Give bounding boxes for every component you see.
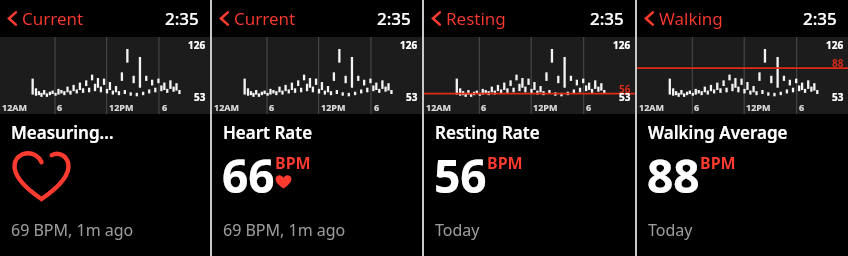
- staticText: 6: [269, 101, 275, 113]
- staticText: Current: [234, 7, 296, 30]
- staticText: 53: [832, 90, 844, 104]
- staticText: 126: [188, 38, 206, 52]
- staticText: 56: [434, 144, 487, 207]
- staticText: 12PM: [109, 101, 134, 113]
- other: Back: [219, 10, 230, 27]
- button[interactable]: Back: [424, 3, 512, 34]
- button[interactable]: 126: [212, 37, 422, 114]
- staticText: 6: [57, 101, 63, 113]
- staticText: Walking Average: [648, 121, 788, 144]
- staticText: Current: [22, 7, 84, 30]
- staticText: 2:35: [165, 7, 199, 30]
- staticText: 6: [586, 101, 592, 113]
- staticText: 126: [400, 38, 418, 52]
- staticText: 12PM: [746, 101, 771, 113]
- staticText: 12AM: [2, 101, 28, 113]
- staticText: Today: [435, 219, 480, 241]
- other: Measuring heart rate: [13, 149, 70, 200]
- staticText: 12PM: [533, 101, 558, 113]
- staticText: Measuring…: [11, 121, 114, 144]
- button[interactable]: Back: [637, 3, 729, 34]
- staticText: Heart Rate: [223, 121, 313, 144]
- staticText: 69 BPM, 1m ago: [223, 219, 346, 241]
- staticText: 6: [374, 101, 380, 113]
- staticText: 88: [647, 144, 700, 207]
- staticText: 6: [694, 101, 700, 113]
- staticText: 56: [619, 82, 631, 96]
- staticText: BPM: [700, 152, 736, 174]
- button[interactable]: 126: [424, 37, 635, 114]
- staticText: BPM: [487, 152, 523, 174]
- other: Back: [431, 10, 442, 27]
- staticText: 2:35: [590, 7, 624, 30]
- other: Back: [644, 10, 655, 27]
- button[interactable]: Back: [212, 3, 302, 34]
- staticText: 12AM: [426, 101, 452, 113]
- button[interactable]: 126: [0, 37, 210, 114]
- staticText: Today: [648, 219, 693, 241]
- staticText: 53: [619, 90, 631, 104]
- staticText: 2:35: [803, 7, 837, 30]
- staticText: Resting Rate: [435, 121, 540, 144]
- staticText: Walking: [659, 7, 723, 30]
- staticText: 12AM: [214, 101, 240, 113]
- staticText: 88: [832, 56, 844, 70]
- staticText: 6: [162, 101, 168, 113]
- staticText: BPM: [275, 152, 311, 174]
- button[interactable]: 126: [637, 37, 848, 114]
- staticText: 126: [826, 38, 844, 52]
- button[interactable]: Back: [0, 3, 90, 34]
- staticText: 69 BPM, 1m ago: [11, 219, 134, 241]
- other: Heart: [275, 174, 292, 189]
- staticText: 6: [799, 101, 805, 113]
- staticText: 2:35: [377, 7, 411, 30]
- staticText: 53: [406, 90, 418, 104]
- staticText: 12PM: [321, 101, 346, 113]
- other: Back: [7, 10, 18, 27]
- staticText: Resting: [446, 7, 506, 30]
- staticText: 6: [481, 101, 487, 113]
- staticText: 12AM: [639, 101, 665, 113]
- staticText: 53: [194, 90, 206, 104]
- staticText: 66: [222, 144, 275, 207]
- staticText: 126: [613, 38, 631, 52]
